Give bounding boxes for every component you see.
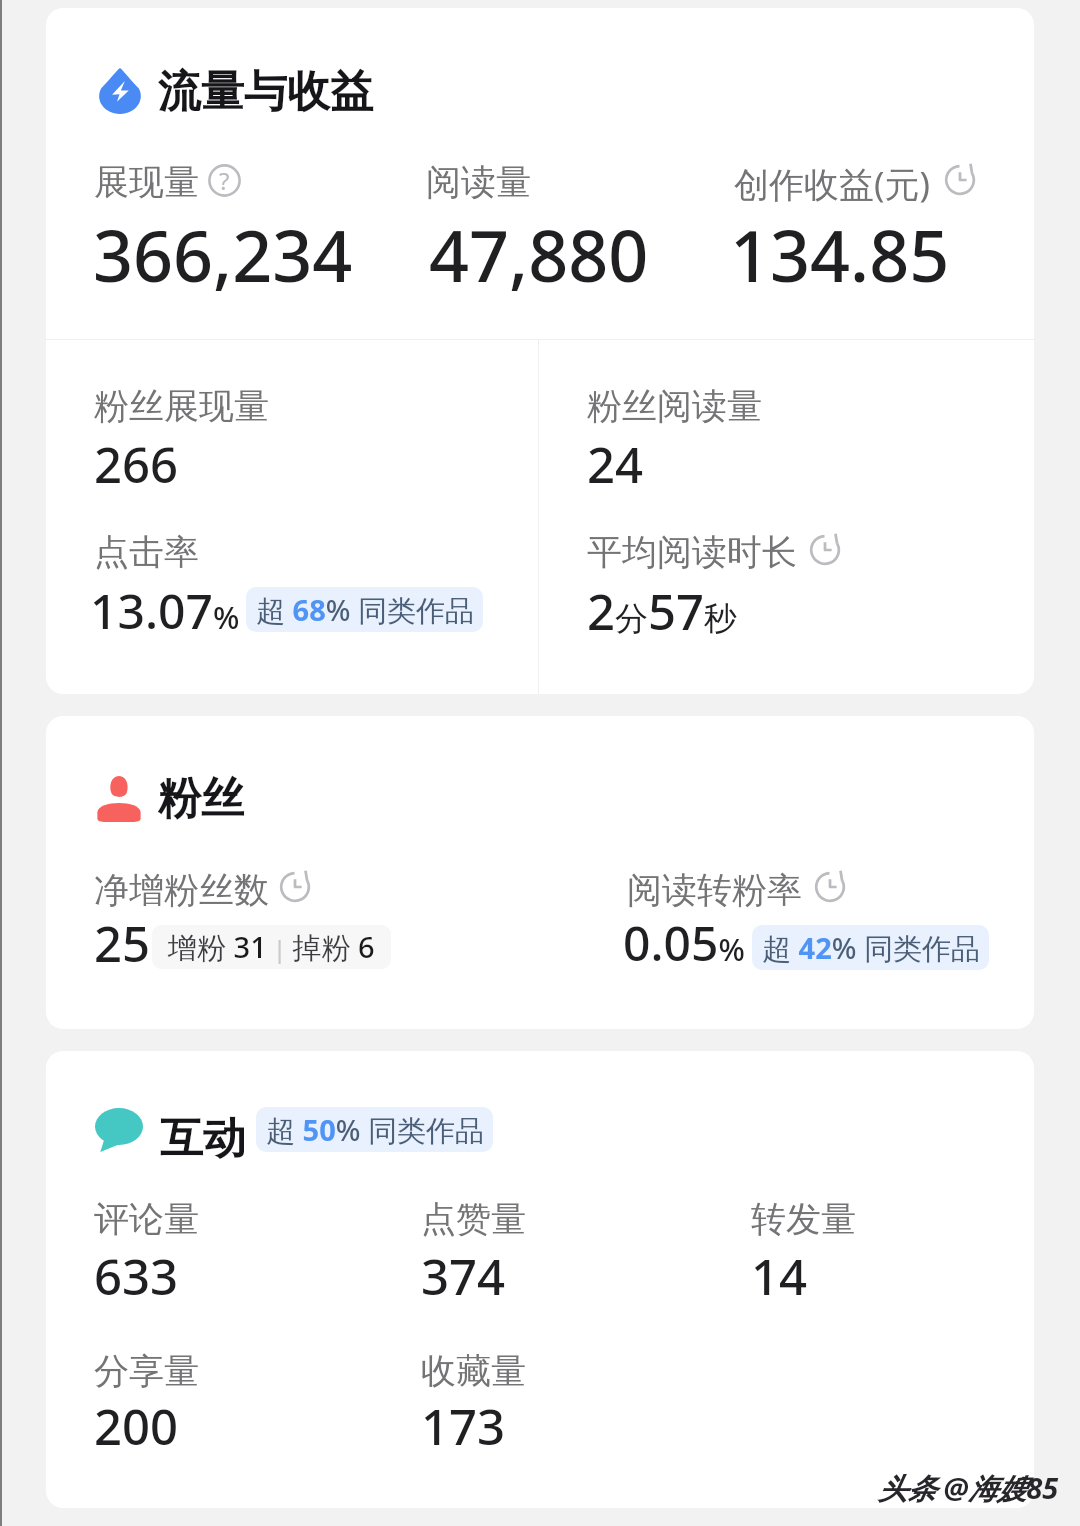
- other: Interaction: [95, 1108, 143, 1152]
- staticText: 平均阅读时长: [587, 530, 797, 574]
- staticText: 13.07%: [90, 578, 240, 643]
- staticText: 点赞量: [421, 1197, 526, 1241]
- staticText: 阅读量: [426, 160, 531, 204]
- staticText: 转发量: [751, 1197, 856, 1241]
- staticText: 47,880: [429, 207, 649, 302]
- staticText: 收藏量: [421, 1349, 526, 1393]
- staticText: 评论量: [94, 1197, 199, 1241]
- staticText: 展现量: [94, 160, 199, 204]
- staticText: 173: [421, 1393, 506, 1460]
- staticText: 创作收益(元): [734, 160, 931, 208]
- other: Fans: [96, 773, 142, 822]
- button[interactable]: 增粉 31 | 掉粉 6: [152, 925, 391, 969]
- button[interactable]: 评论量 633: [94, 1190, 394, 1310]
- staticText: 0.05%: [623, 910, 745, 975]
- staticText: 互动: [160, 1112, 246, 1166]
- staticText: 超 50% 同类作品: [266, 1110, 484, 1150]
- staticText: 24: [587, 431, 644, 498]
- button[interactable]: 平均阅读时长 2分57秒: [587, 523, 1017, 643]
- staticText: 633: [94, 1243, 179, 1310]
- other: Traffic: [98, 67, 142, 114]
- button[interactable]: 收藏量 173: [421, 1342, 721, 1462]
- button[interactable]: 展现量 366,234: [46, 8, 1034, 694]
- staticText: 分享量: [94, 1349, 199, 1393]
- button[interactable]: 阅读量 47,880: [426, 153, 726, 303]
- button[interactable]: 超 68% 同类作品: [246, 587, 483, 632]
- staticText: 粉丝阅读量: [587, 384, 762, 428]
- button[interactable]: 点赞量 374: [421, 1190, 721, 1310]
- button[interactable]: 展现量 366,234: [94, 153, 394, 303]
- staticText: 粉丝展现量: [94, 384, 269, 428]
- staticText: 366,234: [93, 207, 353, 302]
- staticText: 粉丝: [158, 772, 244, 826]
- staticText: 超 68% 同类作品: [256, 590, 474, 630]
- button[interactable]: 点击率 13.07%: [94, 523, 524, 643]
- staticText: 增粉 31 | 掉粉 6: [168, 927, 375, 967]
- button[interactable]: 创作收益 134.85 元: [730, 153, 1020, 303]
- button[interactable]: 超 50% 同类作品: [256, 1107, 493, 1152]
- staticText: 266: [94, 431, 179, 498]
- staticText: 25: [94, 910, 151, 977]
- staticText: 点击率: [94, 530, 199, 574]
- staticText: 流量与收益: [158, 65, 373, 119]
- button[interactable]: 超 42% 同类作品: [752, 925, 989, 970]
- button[interactable]: 净增粉丝数 25: [94, 860, 544, 980]
- button[interactable]: 粉丝阅读量 24: [587, 378, 1017, 508]
- staticText: 阅读转粉率: [627, 868, 802, 912]
- button[interactable]: 阅读转粉率 0.05%: [627, 860, 1027, 980]
- staticText: 2分57秒: [587, 578, 738, 645]
- button[interactable]: 粉丝展现量 266: [94, 378, 524, 508]
- staticText: 14: [751, 1243, 808, 1310]
- button[interactable]: 评论量 633: [46, 1051, 1034, 1508]
- staticText: 134.85: [730, 207, 950, 302]
- staticText: 超 42% 同类作品: [762, 928, 980, 968]
- button[interactable]: 净增粉丝数 25: [46, 716, 1034, 1029]
- staticText: 200: [94, 1393, 179, 1460]
- staticText: ?: [219, 164, 230, 197]
- button[interactable]: 分享量 200: [94, 1342, 394, 1462]
- staticText: 净增粉丝数: [94, 868, 269, 912]
- button[interactable]: 转发量 14: [751, 1190, 1031, 1310]
- staticText: 374: [421, 1243, 506, 1310]
- staticText: 头条 @海嫂85: [878, 1468, 1059, 1508]
